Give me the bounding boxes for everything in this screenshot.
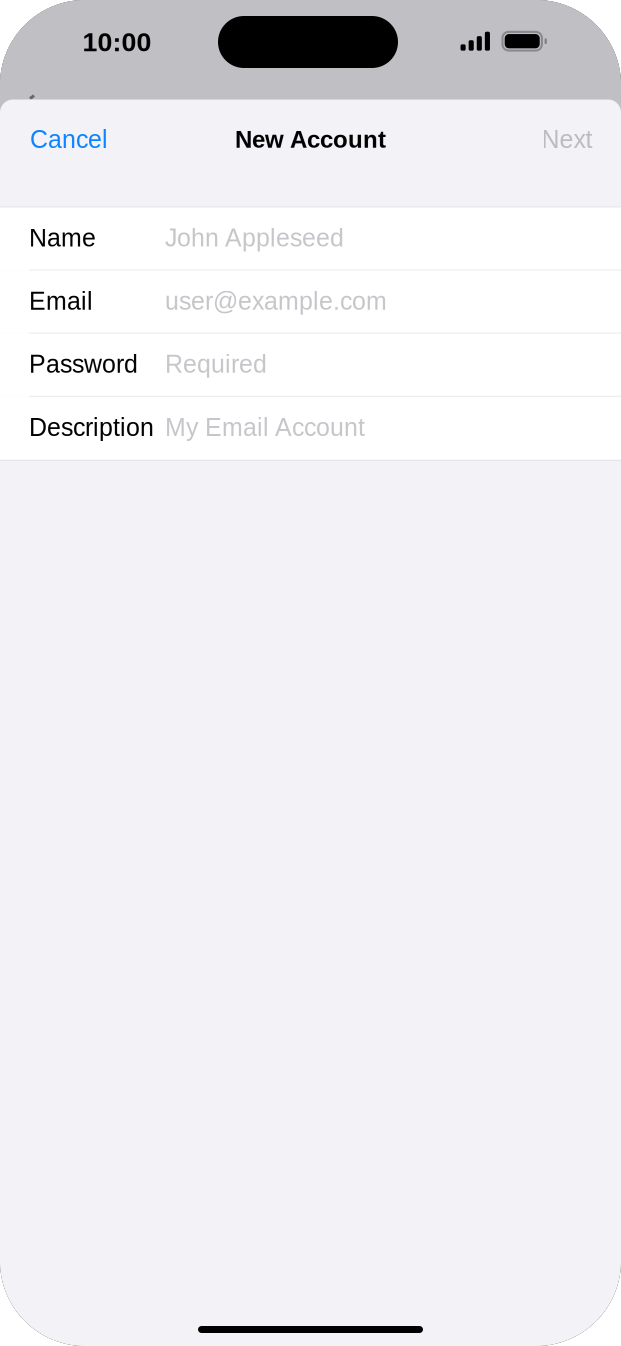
staticText: Next [541, 126, 592, 153]
button[interactable]: Description [0, 397, 621, 460]
staticText: Password [29, 350, 138, 378]
staticText: My Email Account [165, 413, 365, 441]
button[interactable]: Cancel [0, 106, 122, 172]
staticText: John Appleseed [165, 224, 344, 252]
staticText: Email [29, 287, 93, 315]
button[interactable]: Next [527, 106, 621, 172]
staticText: Name [29, 224, 96, 252]
button[interactable]: Password [0, 334, 621, 397]
staticText: Cancel [30, 126, 108, 153]
staticText: Required [165, 350, 267, 378]
staticText: user@example.com [165, 287, 387, 315]
staticText: Description [29, 413, 154, 441]
staticText: 10:00 [82, 27, 151, 57]
button[interactable]: Email [0, 271, 621, 334]
button[interactable]: Name [0, 207, 621, 271]
staticText: New Account [235, 126, 386, 153]
